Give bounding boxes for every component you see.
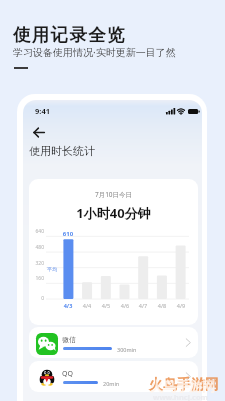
staticText: 4/3: [59, 302, 77, 309]
staticText: 640: [29, 228, 44, 235]
staticText: 学习设备使用情况·实时更新一目了然: [13, 45, 176, 59]
staticText: 火鸟手游网: [149, 376, 219, 394]
button[interactable]: Back: [30, 124, 48, 142]
button[interactable]: 微信: [29, 327, 198, 358]
staticText: 300min: [117, 346, 137, 353]
staticText: QQ: [62, 369, 73, 379]
staticText: 4/8: [153, 302, 171, 309]
staticText: www.hncj.com: [153, 392, 208, 401]
staticText: 使用时长统计: [29, 144, 95, 158]
staticText: 1小时40分钟: [29, 204, 198, 222]
staticText: 610: [59, 230, 77, 238]
staticText: 4/9: [172, 302, 190, 309]
staticText: 7月10日今日: [29, 190, 198, 199]
staticText: 480: [29, 244, 44, 251]
staticText: 9:41: [35, 106, 50, 116]
staticText: 4/7: [134, 302, 152, 309]
staticText: 使用记录全览: [13, 24, 126, 46]
staticText: 160: [29, 275, 44, 282]
staticText: 4/6: [116, 302, 134, 309]
staticText: 320: [29, 260, 44, 267]
staticText: 20min: [103, 380, 120, 387]
staticText: 4/5: [97, 302, 115, 309]
staticText: 平均: [47, 266, 57, 272]
staticText: 微信: [62, 335, 76, 344]
button[interactable]: QQ: [29, 361, 198, 392]
staticText: 4/4: [78, 302, 96, 309]
staticText: 0: [29, 295, 44, 302]
staticText: 火鸟手游网: [150, 378, 215, 394]
